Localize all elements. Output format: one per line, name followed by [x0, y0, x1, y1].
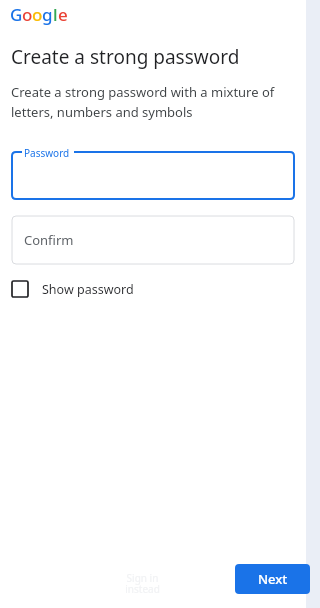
staticText: l: [53, 3, 58, 26]
staticText: g: [42, 3, 53, 26]
staticText: G: [10, 3, 22, 26]
staticText: Next: [258, 570, 288, 588]
staticText: Show password: [42, 281, 134, 298]
staticText: o: [22, 3, 32, 26]
staticText: e: [58, 3, 68, 26]
staticText: o: [32, 3, 42, 26]
button[interactable]: Next: [235, 564, 310, 594]
staticText: Sign in instead: [125, 571, 160, 596]
staticText: Confirm: [24, 231, 74, 249]
staticText: Create a strong password: [11, 44, 240, 70]
staticText: Create a strong password with a mixture …: [11, 83, 306, 121]
button[interactable]: Show password: [12, 277, 134, 301]
staticText: Password: [24, 146, 70, 160]
button[interactable]: Sign in instead: [125, 571, 160, 596]
button[interactable]: Password: [12, 146, 294, 199]
button[interactable]: Confirm: [12, 216, 294, 264]
